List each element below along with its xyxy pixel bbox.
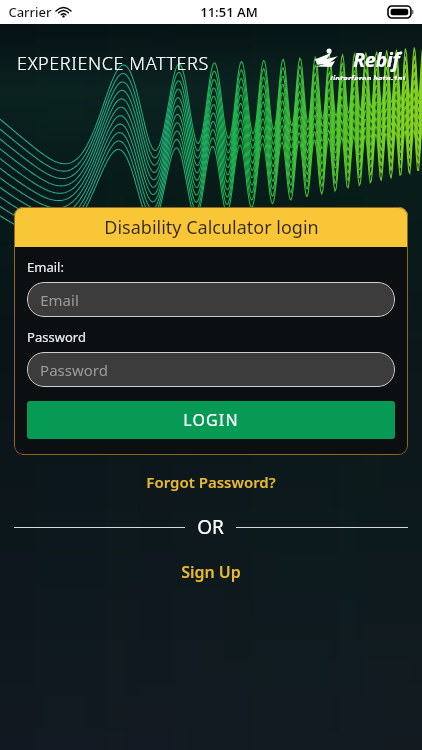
other: Rebif logo [313,46,405,80]
staticText: Password [27,328,86,346]
staticText: Forgot Password? [146,472,276,492]
staticText: Email [40,290,79,310]
staticText: (interferon beta-1a) [330,73,405,80]
staticText: Sign Up [181,561,241,583]
button[interactable]: Email [27,282,395,317]
button[interactable]: Sign Up [0,561,422,583]
button[interactable]: Password [27,352,395,387]
staticText: OR [197,514,224,540]
staticText: Carrier [8,3,52,21]
staticText: Rebif [353,47,400,73]
button[interactable]: Forgot Password? [0,472,422,492]
staticText: Email: [27,258,64,276]
staticText: Disability Calculator login [104,215,319,240]
staticText: Password [40,360,108,380]
button[interactable]: LOGIN [27,401,395,439]
staticText: LOGIN [183,409,239,431]
staticText: EXPERIENCE MATTERS [17,51,209,76]
staticText: 11:51 AM [200,3,258,21]
